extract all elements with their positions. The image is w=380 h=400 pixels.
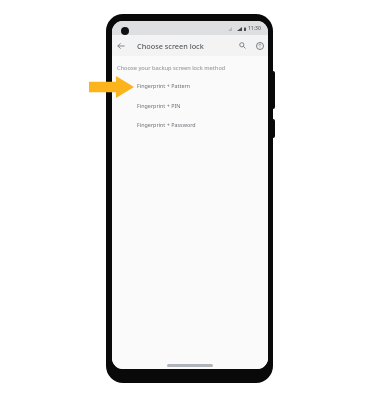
button[interactable]: Back <box>114 39 128 53</box>
staticText: Fingerprint + PIN <box>137 102 181 109</box>
staticText: Fingerprint + Pattern <box>137 82 190 89</box>
button[interactable]: Fingerprint + PIN <box>112 98 268 112</box>
button[interactable]: Search <box>236 39 249 52</box>
button[interactable]: Help <box>253 39 266 52</box>
staticText: Choose your backup screen lock method <box>117 64 226 71</box>
staticText: Choose screen lock <box>137 41 204 51</box>
staticText: Fingerprint + Password <box>137 121 196 128</box>
staticText: 11:30 <box>248 25 261 32</box>
button[interactable]: Fingerprint + Pattern <box>112 78 268 92</box>
button[interactable]: Fingerprint + Password <box>112 117 268 131</box>
